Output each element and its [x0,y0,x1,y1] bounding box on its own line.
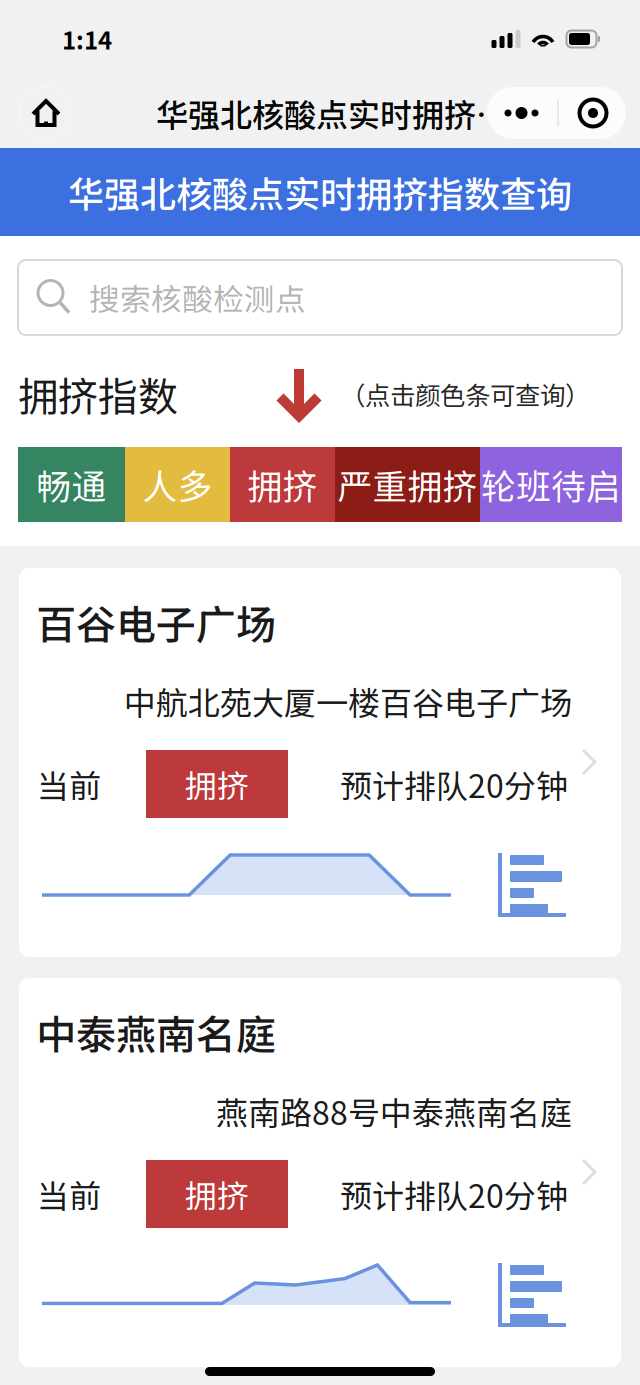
button[interactable]: 轮班待启 [480,447,622,522]
button[interactable]: 拥挤 [230,447,335,522]
staticText: 中航北苑大厦一楼百谷电子广场 [124,678,572,724]
staticText: 拥挤指数 [18,365,178,423]
staticText: 人多 [142,459,212,510]
staticText: 华强北核酸点实时拥挤指数查询 [68,166,572,218]
staticText: 当前 [37,1171,101,1217]
staticText: 燕南路88号中泰燕南名庭 [216,1088,572,1134]
staticText: 搜索核酸检测点 [89,275,306,320]
button[interactable]: 百谷电子广场 [19,568,621,957]
staticText: 中泰燕南名庭 [36,1003,276,1061]
staticText: 百谷电子广场 [36,593,276,651]
staticText: 拥挤 [247,459,317,510]
button[interactable]: More options [486,86,557,140]
button[interactable]: Home [20,87,72,139]
staticText: 1:14 [62,22,112,56]
button[interactable]: 畅通 [18,447,125,522]
button[interactable]: 严重拥挤 [335,447,480,522]
button[interactable]: 人多 [125,447,230,522]
staticText: 严重拥挤 [337,459,477,510]
staticText: （点击颜色条可查询） [340,376,590,412]
staticText: 华强北核酸点实时拥挤… [156,90,508,136]
staticText: 当前 [37,761,101,807]
staticText: 拥挤 [185,761,249,807]
staticText: 拥挤 [185,1171,249,1217]
staticText: 轮班待启 [481,459,621,510]
button[interactable]: 中泰燕南名庭 [19,978,621,1367]
button[interactable]: 搜索核酸检测点 [18,260,622,335]
staticText: 预计排队20分钟 [340,1171,568,1217]
staticText: 畅通 [36,459,106,510]
staticText: 预计排队20分钟 [340,761,568,807]
button[interactable]: Close mini program [559,86,627,140]
